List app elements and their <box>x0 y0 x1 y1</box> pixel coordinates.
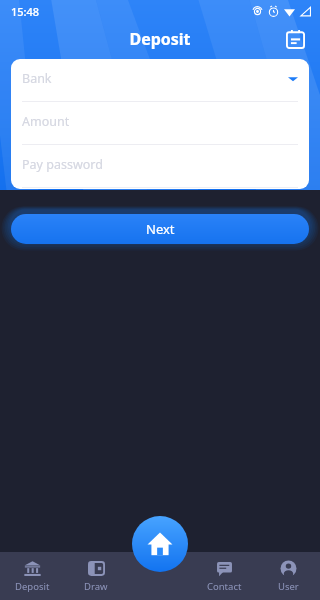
staticText: Draw <box>84 580 108 593</box>
staticText: Pay password <box>22 156 103 173</box>
button[interactable]: Deposit <box>0 552 64 600</box>
button[interactable]: Amount <box>22 102 298 145</box>
button[interactable]: Records <box>280 24 310 54</box>
button[interactable]: Home <box>132 516 188 572</box>
button[interactable]: User <box>256 552 320 600</box>
staticText: Deposit <box>15 580 50 593</box>
staticText: Amount <box>22 113 70 130</box>
button[interactable]: Pay password <box>22 145 298 188</box>
staticText: Bank <box>22 70 52 87</box>
button[interactable]: Contact <box>192 552 256 600</box>
button[interactable]: Bank <box>22 59 298 102</box>
staticText: Contact <box>207 580 242 593</box>
staticText: User <box>278 580 299 593</box>
button[interactable]: Draw <box>64 552 128 600</box>
staticText: Deposit <box>0 28 320 50</box>
staticText: Next <box>146 220 175 238</box>
button[interactable]: Next <box>11 214 309 244</box>
staticText: 15:48 <box>11 4 40 19</box>
